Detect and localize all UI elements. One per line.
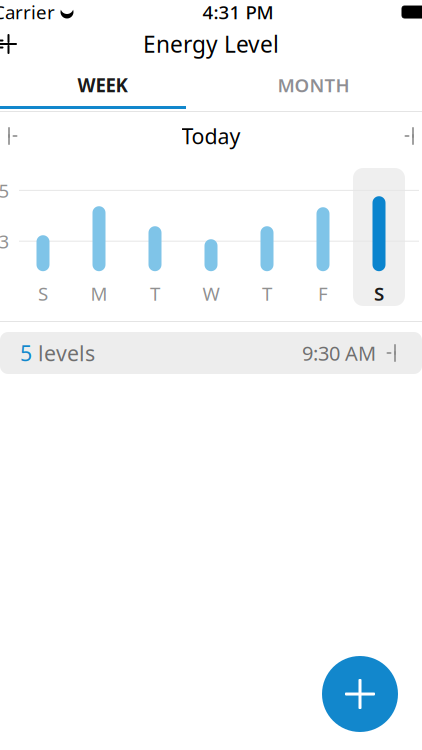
staticText: 4:31 PM [202, 0, 273, 24]
button[interactable]: Back [0, 24, 29, 64]
button[interactable]: Next week [387, 114, 422, 158]
button[interactable]: 5 [0, 332, 422, 374]
staticText: T [150, 281, 160, 306]
staticText: WEEK [77, 73, 127, 97]
button[interactable]: Add entry [322, 656, 398, 732]
staticText: 5 [0, 178, 9, 203]
button[interactable]: MONTH [205, 64, 422, 106]
staticText: Energy Level [143, 29, 279, 59]
staticText: 9:30 AM [302, 340, 376, 366]
button[interactable]: Previous week [0, 114, 35, 158]
staticText: T [262, 281, 272, 306]
staticText: Today [181, 122, 240, 150]
staticText: Carrier [0, 0, 55, 24]
staticText: MONTH [277, 73, 349, 97]
staticText: S [374, 281, 384, 306]
staticText: M [90, 281, 107, 306]
staticText: 3 [0, 229, 9, 254]
staticText: levels [32, 339, 95, 367]
staticText: 5 [20, 339, 32, 367]
button[interactable]: WEEK [0, 64, 205, 106]
staticText: S [38, 281, 48, 306]
staticText: W [202, 281, 219, 306]
staticText: F [318, 281, 328, 306]
